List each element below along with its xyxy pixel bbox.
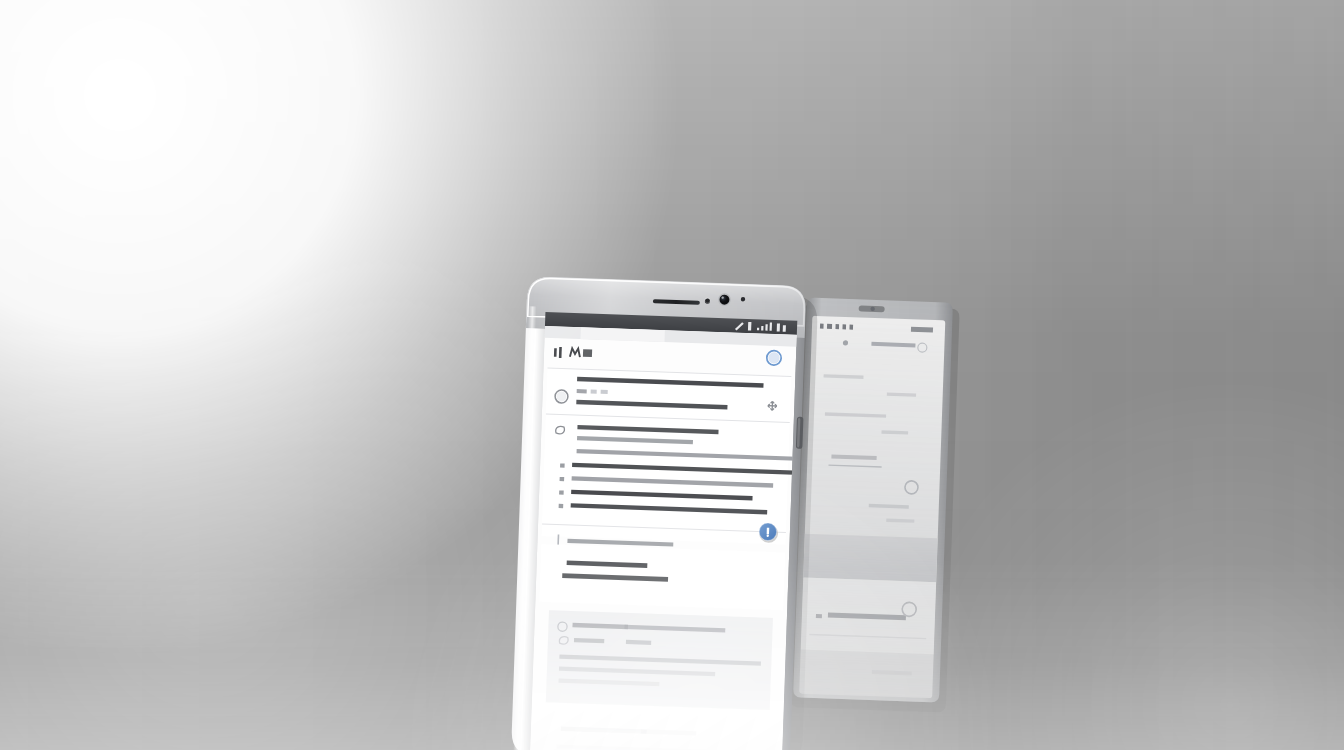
- button[interactable]: Email app shown on a phone in a studio r…: [0, 0, 1344, 750]
